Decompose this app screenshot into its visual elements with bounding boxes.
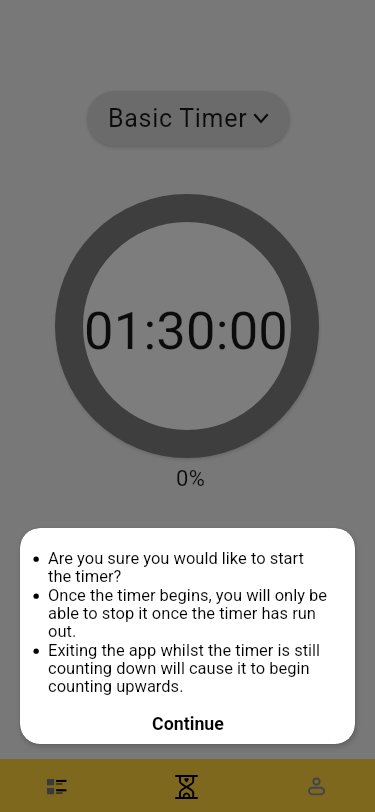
staticText: 01:30:00 xyxy=(84,300,289,362)
button[interactable]: Profile xyxy=(280,759,352,812)
button[interactable]: Timer xyxy=(150,759,222,812)
button[interactable]: Continue xyxy=(20,713,355,734)
button[interactable]: Basic Timer xyxy=(87,91,289,146)
staticText: Are you sure you would like to start the… xyxy=(48,549,329,586)
staticText: Once the timer begins, you will only be … xyxy=(48,586,329,641)
staticText: 0% xyxy=(176,466,206,492)
staticText: Exiting the app whilst the timer is stil… xyxy=(48,641,329,696)
staticText: Basic Timer xyxy=(108,104,248,133)
staticText: Continue xyxy=(152,713,224,734)
button[interactable]: Sessions xyxy=(20,759,92,812)
